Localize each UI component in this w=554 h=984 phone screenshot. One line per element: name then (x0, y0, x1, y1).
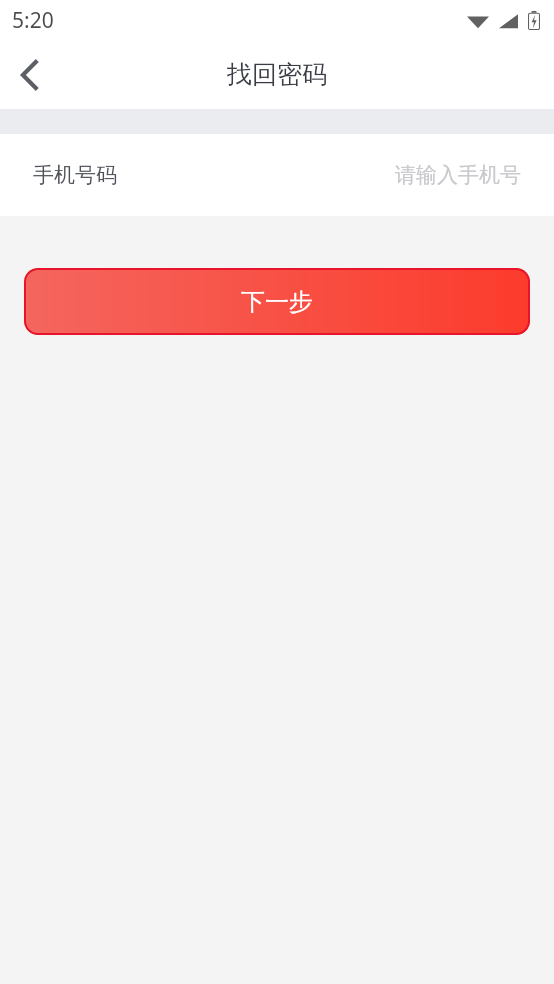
staticText: 下一步 (241, 287, 313, 317)
staticText: 手机号码 (33, 162, 117, 188)
staticText: 找回密码 (227, 59, 327, 90)
staticText: 5:20 (12, 6, 54, 35)
button[interactable]: Back (0, 46, 58, 104)
button[interactable]: 下一步 (24, 268, 530, 335)
staticText: 请输入手机号 (395, 162, 521, 188)
button[interactable]: 手机号码 (0, 134, 554, 216)
